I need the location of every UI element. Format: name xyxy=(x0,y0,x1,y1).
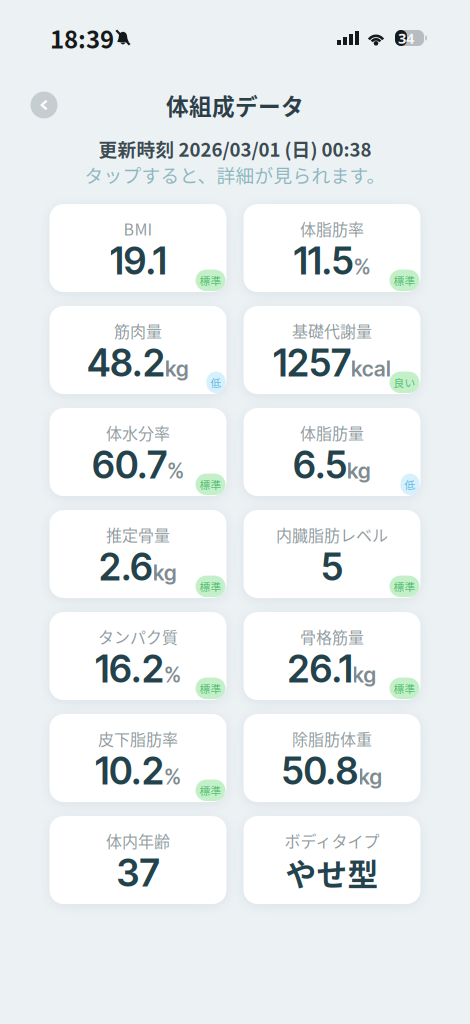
staticText: % xyxy=(353,254,370,279)
staticText: 標準 xyxy=(199,273,221,288)
button[interactable]: 基礎代謝量 xyxy=(243,306,420,394)
staticText: 内臓脂肪レベル xyxy=(276,523,388,546)
staticText: 標準 xyxy=(393,579,415,594)
staticText: 体脂肪率 xyxy=(300,217,364,240)
staticText: kg xyxy=(165,356,189,381)
staticText: 16.2 xyxy=(95,646,164,691)
staticText: 低 xyxy=(210,375,221,390)
staticText: 5 xyxy=(321,544,343,589)
staticText: kg xyxy=(352,662,376,687)
staticText: 低 xyxy=(404,477,415,492)
staticText: kg xyxy=(358,764,382,789)
staticText: タップすると、詳細が見られます。 xyxy=(84,161,385,188)
staticText: 標準 xyxy=(199,783,221,798)
staticText: 標準 xyxy=(393,273,415,288)
staticText: 標準 xyxy=(199,579,221,594)
staticText: 26.1 xyxy=(287,646,352,691)
staticText: 筋肉量 xyxy=(114,319,162,342)
staticText: やせ型 xyxy=(285,850,378,895)
staticText: % xyxy=(164,764,181,789)
staticText: 10.2 xyxy=(95,748,164,793)
staticText: 体水分率 xyxy=(106,421,170,444)
staticText: 体脂肪量 xyxy=(300,421,364,444)
staticText: 50.8 xyxy=(281,748,358,793)
button[interactable]: 内臓脂肪レベル xyxy=(243,510,420,598)
staticText: BMI xyxy=(123,217,152,240)
button[interactable]: 除脂肪体重 xyxy=(243,714,420,802)
staticText: 良い xyxy=(393,375,415,390)
button[interactable]: 筋肉量 xyxy=(49,306,226,394)
button[interactable]: 体脂肪量 xyxy=(243,408,420,496)
staticText: 1257 xyxy=(273,340,351,385)
staticText: 推定骨量 xyxy=(106,523,170,546)
button[interactable]: 推定骨量 xyxy=(49,510,226,598)
button[interactable]: Back xyxy=(27,88,61,122)
staticText: 48.2 xyxy=(87,340,165,385)
staticText: 6.5 xyxy=(293,442,347,487)
button[interactable]: タンパク質 xyxy=(49,612,226,700)
staticText: 18:39 xyxy=(50,21,114,55)
staticText: 更新時刻 2026/03/01 (日) 00:38 xyxy=(98,135,371,162)
staticText: 標準 xyxy=(199,681,221,696)
staticText: 体内年齢 xyxy=(106,829,170,852)
staticText: 皮下脂肪率 xyxy=(98,727,178,750)
button[interactable]: BMI xyxy=(49,204,226,292)
staticText: 標準 xyxy=(393,681,415,696)
button[interactable]: 体内年齢 xyxy=(49,816,226,904)
staticText: 19.1 xyxy=(109,238,166,283)
staticText: 骨格筋量 xyxy=(300,625,364,648)
staticText: % xyxy=(167,458,184,483)
staticText: 60.7 xyxy=(92,442,167,487)
staticText: kg xyxy=(347,458,371,483)
button[interactable]: ボディタイプ xyxy=(243,816,420,904)
staticText: % xyxy=(164,662,181,687)
staticText: 34 xyxy=(398,28,414,48)
staticText: 37 xyxy=(116,850,159,895)
staticText: kg xyxy=(153,560,177,585)
staticText: ボディタイプ xyxy=(284,829,379,852)
button[interactable]: 体脂肪率 xyxy=(243,204,420,292)
staticText: タンパク質 xyxy=(98,625,178,648)
staticText: kcal xyxy=(351,356,391,381)
staticText: 体組成データ xyxy=(166,89,304,121)
staticText: 除脂肪体重 xyxy=(292,727,372,750)
button[interactable]: 骨格筋量 xyxy=(243,612,420,700)
staticText: 基礎代謝量 xyxy=(292,319,372,342)
staticText: 標準 xyxy=(199,477,221,492)
button[interactable]: 体水分率 xyxy=(49,408,226,496)
staticText: 11.5 xyxy=(293,238,353,283)
staticText: 2.6 xyxy=(99,544,153,589)
button[interactable]: 皮下脂肪率 xyxy=(49,714,226,802)
